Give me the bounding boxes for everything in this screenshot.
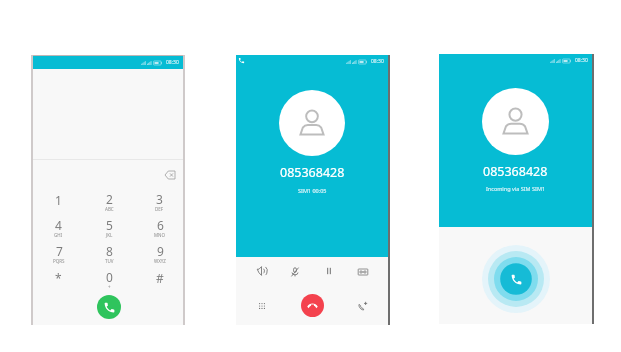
button[interactable]: 9 bbox=[134, 239, 185, 265]
button[interactable]: End call bbox=[301, 294, 324, 317]
button[interactable]: 5 bbox=[84, 213, 135, 239]
button[interactable]: 2 bbox=[84, 187, 135, 213]
button[interactable]: 3 bbox=[134, 187, 185, 213]
button[interactable]: Backspace bbox=[163, 168, 177, 182]
staticText: TUV bbox=[105, 258, 114, 264]
staticText: 1 bbox=[55, 192, 62, 208]
staticText: * bbox=[55, 270, 62, 286]
staticText: SIM1 00:05 bbox=[298, 187, 327, 194]
staticText: GHI bbox=[54, 232, 63, 238]
button[interactable]: 0 bbox=[84, 265, 135, 291]
button[interactable]: Add call bbox=[354, 297, 372, 315]
staticText: 2 bbox=[106, 191, 113, 207]
staticText: 7 bbox=[56, 243, 63, 259]
staticText: 4 bbox=[55, 217, 62, 233]
staticText: 0 bbox=[106, 269, 113, 285]
staticText: 6 bbox=[157, 217, 164, 233]
staticText: 3 bbox=[156, 191, 163, 207]
button[interactable]: Hold bbox=[320, 262, 338, 280]
staticText: 085368428 bbox=[280, 164, 345, 181]
button[interactable]: 1 bbox=[33, 187, 84, 213]
staticText: 5 bbox=[106, 217, 113, 233]
button[interactable]: 7 bbox=[33, 239, 84, 265]
staticText: DEF bbox=[155, 206, 164, 212]
button[interactable]: Record bbox=[354, 263, 372, 281]
staticText: # bbox=[156, 270, 164, 286]
staticText: + bbox=[108, 284, 111, 290]
staticText: Incoming via SIM SIM1 bbox=[486, 185, 546, 192]
button[interactable]: * bbox=[33, 265, 84, 291]
button[interactable]: Speaker bbox=[253, 262, 271, 280]
button[interactable]: 6 bbox=[134, 213, 185, 239]
staticText: ABC bbox=[105, 206, 114, 212]
button[interactable]: Call bbox=[97, 295, 121, 319]
staticText: 08:30 bbox=[371, 58, 384, 65]
staticText: 8 bbox=[106, 243, 113, 259]
button[interactable]: Keypad bbox=[253, 297, 271, 315]
staticText: 085368428 bbox=[483, 163, 548, 180]
staticText: 08:30 bbox=[166, 59, 179, 66]
button[interactable]: # bbox=[134, 265, 185, 291]
staticText: PQRS bbox=[53, 258, 65, 264]
staticText: 9 bbox=[157, 243, 164, 259]
button[interactable]: Mute bbox=[286, 263, 304, 281]
staticText: WXYZ bbox=[154, 258, 166, 264]
staticText: MNO bbox=[154, 232, 166, 238]
button[interactable]: 4 bbox=[33, 213, 84, 239]
staticText: JKL bbox=[106, 232, 113, 238]
button[interactable]: Answer call bbox=[481, 244, 551, 314]
staticText: 08:30 bbox=[575, 57, 588, 64]
button[interactable]: 8 bbox=[84, 239, 135, 265]
